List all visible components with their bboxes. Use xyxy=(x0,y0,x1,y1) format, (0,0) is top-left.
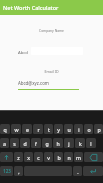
staticText: y xyxy=(57,126,60,133)
staticText: . xyxy=(77,168,79,175)
staticText: Net Worth Calculator xyxy=(3,4,59,11)
button[interactable]: k xyxy=(75,138,85,148)
staticText: z xyxy=(17,154,20,161)
staticText: i xyxy=(78,126,80,133)
button[interactable]: g xyxy=(42,138,52,148)
button[interactable]: i xyxy=(74,124,83,134)
button[interactable]: j xyxy=(64,138,74,148)
button[interactable]: a xyxy=(0,138,9,148)
button[interactable]: Net Worth Calculator xyxy=(0,0,103,15)
button[interactable]: . xyxy=(73,166,82,176)
staticText: v xyxy=(47,154,50,161)
staticText: Abcd@xyz.com xyxy=(18,80,49,86)
staticText: t xyxy=(48,126,50,133)
button[interactable]: l xyxy=(86,138,96,148)
staticText: f xyxy=(35,140,37,147)
staticText: b xyxy=(57,154,61,161)
staticText: r xyxy=(37,126,40,133)
staticText: u xyxy=(67,126,71,133)
staticText: Company Name xyxy=(0,28,103,32)
staticText: Abcd xyxy=(18,50,28,56)
staticText: q xyxy=(3,126,7,133)
staticText: m xyxy=(76,154,81,161)
staticText: e xyxy=(26,126,29,133)
staticText: o xyxy=(87,126,91,133)
button[interactable]: Enter xyxy=(83,166,103,176)
button[interactable]: Backspace xyxy=(84,152,103,162)
button[interactable]: h xyxy=(53,138,63,148)
staticText: n xyxy=(67,154,71,161)
staticText: j xyxy=(68,140,70,147)
button[interactable]: Shift xyxy=(0,152,13,162)
button[interactable]: b xyxy=(54,152,63,162)
button[interactable]: 123 xyxy=(0,166,13,176)
button[interactable]: q xyxy=(0,124,10,134)
button[interactable]: f xyxy=(31,138,41,148)
button[interactable]: , xyxy=(14,166,23,176)
button[interactable]: t xyxy=(44,124,53,134)
button[interactable]: p xyxy=(94,124,103,134)
staticText: 123 xyxy=(3,168,11,174)
staticText: s xyxy=(13,140,16,147)
button[interactable]: n xyxy=(64,152,73,162)
staticText: c xyxy=(37,154,40,161)
button[interactable]: r xyxy=(33,124,43,134)
staticText: w xyxy=(14,126,19,133)
button[interactable]: s xyxy=(10,138,19,148)
staticText: g xyxy=(45,140,49,147)
staticText: x xyxy=(27,154,30,161)
button[interactable]: w xyxy=(11,124,21,134)
button[interactable]: v xyxy=(44,152,53,162)
staticText: d xyxy=(23,140,27,147)
button[interactable]: o xyxy=(84,124,93,134)
button[interactable]: u xyxy=(64,124,73,134)
button[interactable]: m xyxy=(74,152,83,162)
staticText: a xyxy=(3,140,6,147)
staticText: p xyxy=(97,126,101,133)
button[interactable]: e xyxy=(22,124,32,134)
staticText: k xyxy=(79,140,82,147)
staticText: , xyxy=(18,168,20,175)
staticText: l xyxy=(90,140,92,147)
staticText: h xyxy=(56,140,60,147)
button[interactable]: d xyxy=(20,138,30,148)
button[interactable]: z xyxy=(14,152,23,162)
button[interactable]: x xyxy=(24,152,33,162)
staticText: Email ID xyxy=(0,69,103,74)
button[interactable]: y xyxy=(54,124,63,134)
button[interactable]: c xyxy=(34,152,43,162)
